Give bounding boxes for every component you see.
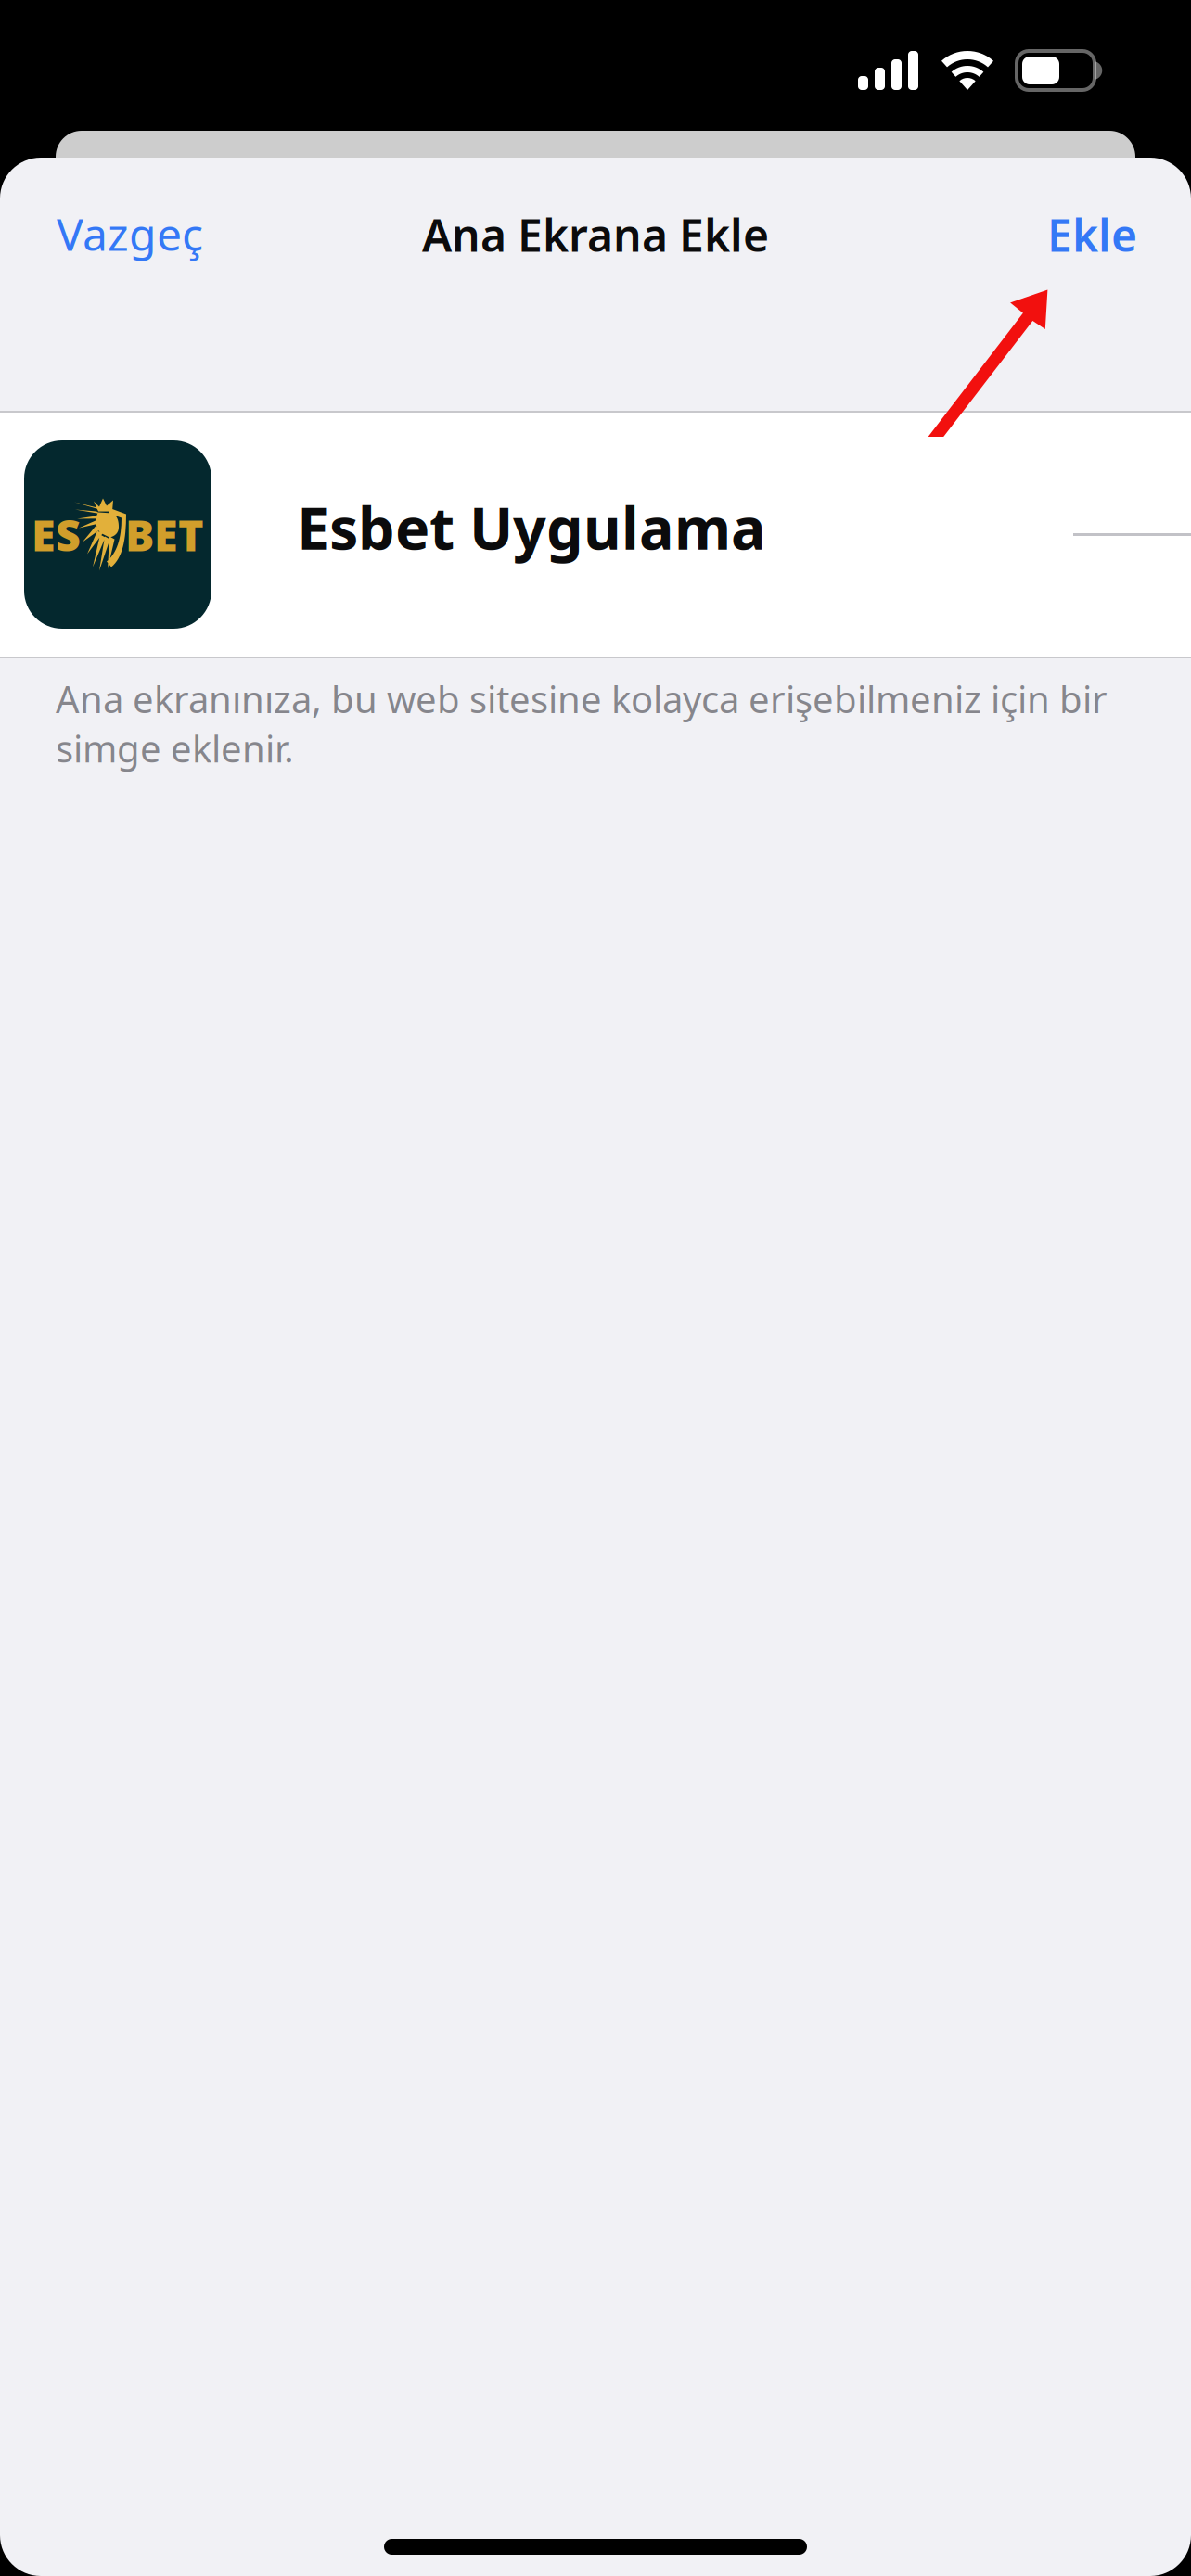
button[interactable]: Vazgeç: [0, 158, 231, 315]
staticText: BET: [125, 506, 204, 563]
button[interactable]: Ekle: [1019, 158, 1191, 315]
button[interactable]: ES: [0, 413, 1191, 657]
staticText: Vazgeç: [57, 204, 203, 263]
staticText: Ana Ekrana Ekle: [422, 205, 769, 264]
staticText: Ana ekranınıza, bu web sitesine kolayca …: [56, 674, 1108, 773]
staticText: Ekle: [1047, 205, 1137, 264]
staticText: ES: [32, 506, 81, 563]
staticText: Esbet Uygulama: [297, 489, 766, 566]
